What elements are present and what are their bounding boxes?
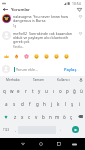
button[interactable]: Voice input	[76, 76, 85, 84]
button[interactable]: l	[62, 97, 69, 110]
button[interactable]: h	[41, 97, 48, 110]
staticText: q	[3, 88, 6, 94]
button[interactable]: c	[26, 110, 33, 123]
button[interactable]: Send	[72, 126, 79, 133]
staticText: v	[35, 114, 38, 120]
staticText: m	[55, 114, 60, 120]
button[interactable]: Switch keyboard	[69, 138, 79, 150]
button[interactable]: Like	[78, 14, 83, 19]
staticText: i	[79, 101, 81, 107]
button[interactable]: j	[48, 97, 55, 110]
button[interactable]: Back	[17, 138, 28, 150]
button[interactable]: Emoji	[41, 52, 51, 61]
staticText: z	[14, 114, 17, 120]
staticText: y	[38, 88, 41, 94]
staticText: ğ	[73, 88, 76, 94]
staticText: Yanıtla...	[13, 45, 25, 49]
button[interactable]: Recent apps	[54, 138, 64, 150]
staticText: ö	[63, 114, 66, 120]
staticText: mefte02 Sonrakinde cok kazandan olduk ve…	[13, 31, 78, 44]
staticText: ç	[70, 114, 73, 120]
staticText: ,	[15, 127, 16, 132]
button[interactable]: Like	[78, 31, 83, 36]
button[interactable]: i	[76, 97, 83, 110]
button[interactable]: Emoji	[61, 52, 71, 61]
button[interactable]: k	[55, 97, 62, 110]
button[interactable]: nalasagma You never knew how dangerous i…	[0, 13, 85, 28]
staticText: e	[17, 88, 20, 94]
button[interactable]: d	[18, 97, 26, 110]
button[interactable]: y	[36, 84, 43, 97]
button[interactable]: t	[29, 84, 36, 97]
button[interactable]: Paylaş	[63, 66, 78, 73]
button[interactable]: o	[57, 84, 64, 97]
button[interactable]: Tamam	[26, 76, 51, 84]
staticText: h	[43, 101, 46, 107]
button[interactable]: r	[22, 84, 29, 97]
staticText: Yorumlar	[11, 7, 30, 13]
staticText: f	[29, 101, 31, 107]
button[interactable]: a	[2, 97, 10, 110]
staticText: p	[66, 88, 69, 94]
staticText: ?123	[3, 128, 10, 132]
button[interactable]: ü	[78, 84, 85, 97]
staticText: ı	[53, 88, 55, 94]
button[interactable]: ö	[61, 110, 68, 123]
button[interactable]: Backspace	[75, 110, 85, 123]
button[interactable]: e	[15, 84, 22, 97]
button[interactable]: ı	[50, 84, 57, 97]
button[interactable]: Share	[74, 6, 85, 13]
button[interactable]: m	[54, 110, 61, 123]
button[interactable]: Emoji	[11, 52, 21, 61]
staticText: Tamam	[33, 78, 45, 82]
staticText: 10:54	[72, 1, 81, 6]
button[interactable]: mefte02 Sonrakinde cok kazandan olduk ve…	[0, 28, 85, 49]
button[interactable]: ,	[12, 123, 18, 136]
staticText: 1g	[13, 24, 17, 28]
button[interactable]: Emoji	[1, 52, 11, 61]
staticText: n	[49, 114, 52, 120]
staticText: g	[36, 101, 39, 107]
button[interactable]: ş	[69, 97, 76, 110]
staticText: s	[13, 101, 16, 107]
button[interactable]: Home	[36, 138, 46, 150]
staticText: t	[32, 88, 34, 94]
staticText: o	[59, 88, 62, 94]
staticText: a	[5, 101, 8, 107]
button[interactable]: Kullanıcı	[51, 76, 76, 84]
button[interactable]: Emoji	[51, 52, 61, 61]
button[interactable]: p	[64, 84, 71, 97]
button[interactable]: n	[47, 110, 54, 123]
button[interactable]: q	[0, 84, 8, 97]
button[interactable]: Shift	[0, 110, 11, 123]
button[interactable]: ç	[68, 110, 75, 123]
staticText: ş	[71, 101, 74, 107]
button[interactable]: x	[19, 110, 26, 123]
staticText: u	[45, 88, 48, 94]
staticText: Kullanıcı	[57, 78, 70, 82]
button[interactable]: b	[40, 110, 47, 123]
button[interactable]: Emoji	[31, 52, 41, 61]
staticText: w	[10, 88, 14, 94]
button[interactable]: ğ	[71, 84, 78, 97]
button[interactable]: s	[10, 97, 18, 110]
staticText: c	[28, 114, 31, 120]
staticText: r	[25, 88, 27, 94]
button[interactable]: g	[34, 97, 41, 110]
button[interactable]: Merhaba	[0, 76, 26, 84]
button[interactable]: z	[11, 110, 19, 123]
staticText: k	[57, 101, 60, 107]
staticText: b	[42, 114, 45, 120]
button[interactable]: Emoji	[21, 52, 31, 61]
staticText: Paylaş	[64, 67, 77, 72]
button[interactable]: ?123	[0, 123, 12, 136]
staticText: d	[21, 101, 24, 107]
button[interactable]: f	[26, 97, 34, 110]
button[interactable]: w	[8, 84, 15, 97]
staticText: .	[60, 127, 61, 132]
button[interactable]: Back	[0, 6, 11, 13]
button[interactable]: v	[33, 110, 40, 123]
button[interactable]: u	[43, 84, 50, 97]
